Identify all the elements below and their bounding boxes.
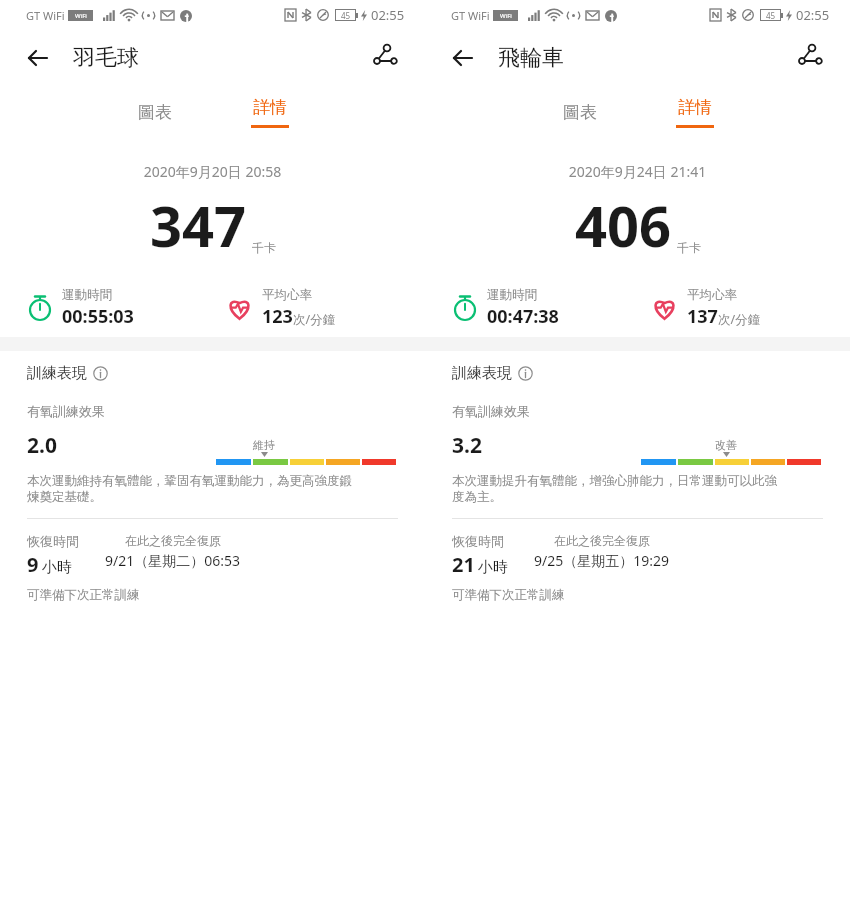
staticText: 圖表	[138, 102, 172, 123]
staticText: 123	[262, 304, 293, 329]
staticText: 02:55	[371, 6, 405, 24]
staticText: 改善	[715, 438, 737, 452]
staticText: 飛輪車	[498, 44, 564, 72]
button[interactable]: Back	[18, 38, 58, 78]
staticText: 本次運動提升有氧體能，增強心肺能力，日常運動可以此強	[452, 473, 777, 489]
staticText: 347	[150, 187, 247, 263]
staticText: 次/分鐘	[718, 311, 761, 328]
staticText: WiFi	[500, 12, 512, 20]
staticText: 有氧訓練效果	[452, 403, 530, 419]
staticText: 恢復時間	[452, 533, 504, 549]
staticText: 00:55:03	[62, 304, 134, 329]
staticText: 圖表	[563, 102, 597, 123]
staticText: 可準備下次正常訓練	[27, 587, 140, 603]
staticText: 維持	[253, 438, 275, 452]
staticText: 訓練表現	[27, 364, 87, 383]
staticText: 9/21（星期二）06:53	[105, 551, 241, 570]
button[interactable]: 圖表	[530, 86, 630, 138]
staticText: 詳情	[253, 97, 287, 118]
staticText: 21	[452, 551, 475, 578]
button[interactable]: 詳情	[220, 86, 320, 138]
button[interactable]: 圖表	[105, 86, 205, 138]
staticText: 45	[766, 10, 776, 20]
staticText: 平均心率	[262, 287, 312, 303]
staticText: 恢復時間	[27, 533, 79, 549]
staticText: 小時	[42, 558, 72, 577]
staticText: 在此之後完全復原	[554, 533, 650, 548]
staticText: 在此之後完全復原	[125, 533, 221, 548]
staticText: 訓練表現	[452, 364, 512, 383]
staticText: 可準備下次正常訓練	[452, 587, 565, 603]
staticText: 小時	[478, 558, 508, 577]
staticText: 千卡	[677, 240, 701, 255]
staticText: 45	[341, 10, 351, 20]
button[interactable]: 訓練表現	[452, 364, 533, 383]
staticText: 羽毛球	[73, 44, 139, 72]
staticText: 2020年9月24日 21:41	[425, 162, 850, 181]
staticText: 137	[687, 304, 718, 329]
button[interactable]: 詳情	[645, 86, 745, 138]
other: Info	[93, 366, 108, 381]
staticText: 00:47:38	[487, 304, 559, 329]
staticText: 有氧訓練效果	[27, 403, 105, 419]
staticText: 運動時間	[62, 287, 112, 303]
staticText: 千卡	[252, 240, 276, 255]
button[interactable]: 訓練表現	[27, 364, 108, 383]
staticText: 詳情	[678, 97, 712, 118]
button[interactable]: Share	[790, 38, 830, 78]
button[interactable]: Share	[365, 38, 405, 78]
staticText: 02:55	[796, 6, 830, 24]
staticText: 煉奠定基礎。	[27, 489, 102, 505]
staticText: GT WiFi	[26, 8, 65, 23]
button[interactable]: Back	[443, 38, 483, 78]
staticText: 406	[575, 187, 672, 263]
staticText: GT WiFi	[451, 8, 490, 23]
staticText: 運動時間	[487, 287, 537, 303]
staticText: 次/分鐘	[293, 311, 336, 328]
other: Info	[518, 366, 533, 381]
staticText: 2020年9月20日 20:58	[0, 162, 425, 181]
staticText: 度為主。	[452, 489, 502, 505]
staticText: 9/25（星期五）19:29	[534, 551, 670, 570]
staticText: 9	[27, 551, 39, 578]
staticText: 本次運動維持有氧體能，鞏固有氧運動能力，為更高強度鍛	[27, 473, 352, 489]
staticText: 2.0	[27, 431, 57, 460]
staticText: 平均心率	[687, 287, 737, 303]
staticText: WiFi	[75, 12, 87, 20]
staticText: 3.2	[452, 431, 482, 460]
